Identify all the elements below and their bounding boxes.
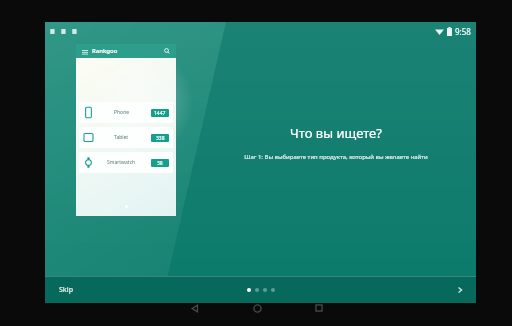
staticText: Phone bbox=[114, 109, 130, 116]
staticText: 338 bbox=[156, 135, 165, 142]
staticText: 1447 bbox=[154, 110, 166, 117]
button[interactable]: Tablet bbox=[79, 127, 173, 148]
button[interactable]: Skip bbox=[53, 281, 79, 299]
button[interactable]: Search bbox=[162, 46, 172, 56]
button[interactable]: Phone bbox=[79, 102, 173, 123]
button[interactable]: Smartwatch bbox=[79, 152, 173, 173]
staticText: Tablet bbox=[114, 134, 129, 141]
button[interactable]: Menu bbox=[80, 47, 89, 56]
staticText: Что вы ищете? bbox=[290, 124, 382, 142]
staticText: 38 bbox=[157, 160, 163, 167]
button[interactable]: Next bbox=[450, 280, 470, 300]
staticText: Skip bbox=[59, 285, 73, 295]
button[interactable]: Recent apps bbox=[299, 296, 339, 320]
staticText: Smartwatch bbox=[107, 159, 136, 166]
staticText: Rankgoo bbox=[92, 47, 118, 55]
button[interactable]: Home bbox=[237, 296, 277, 320]
staticText: Шаг 1: Вы выбираете тип продукта, которы… bbox=[244, 153, 428, 161]
staticText: 9:58 bbox=[455, 26, 471, 37]
button[interactable]: Back bbox=[175, 296, 215, 320]
